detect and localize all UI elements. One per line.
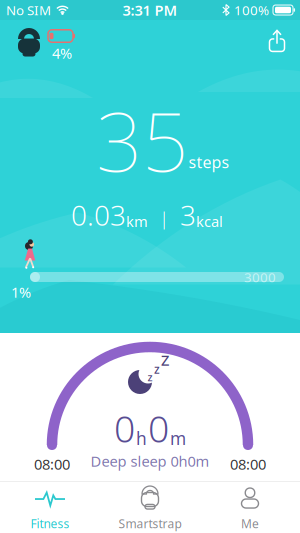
staticText: No SIM: [6, 1, 51, 19]
staticText: Me: [241, 515, 259, 531]
staticText: km: [126, 212, 148, 231]
staticText: Z: [161, 350, 169, 370]
staticText: 3: [180, 196, 196, 234]
staticText: h: [136, 427, 147, 450]
staticText: |: [159, 206, 169, 231]
staticText: Fitness: [30, 515, 69, 531]
staticText: kcal: [196, 212, 223, 231]
staticText: 3:31 PM: [122, 0, 177, 20]
staticText: 35: [96, 86, 188, 194]
staticText: 08:00: [34, 454, 70, 474]
button[interactable]: Me: [200, 481, 300, 533]
button[interactable]: Share: [260, 22, 294, 60]
staticText: Deep sleep 0h0m: [90, 451, 209, 471]
staticText: z: [147, 370, 152, 384]
staticText: 0.03: [71, 196, 126, 234]
staticText: steps: [188, 151, 229, 173]
button[interactable]: Fitness: [0, 481, 100, 533]
staticText: m: [170, 427, 186, 450]
staticText: 100%: [234, 1, 269, 19]
staticText: 0: [148, 403, 169, 453]
staticText: 3000: [244, 268, 276, 286]
staticText: 08:00: [230, 454, 266, 474]
staticText: 4%: [52, 43, 72, 63]
staticText: 1%: [11, 282, 31, 302]
staticText: z: [154, 361, 160, 377]
staticText: 0: [114, 403, 135, 453]
button[interactable]: Smartstrap: [100, 481, 200, 533]
staticText: Smartstrap: [118, 515, 181, 531]
